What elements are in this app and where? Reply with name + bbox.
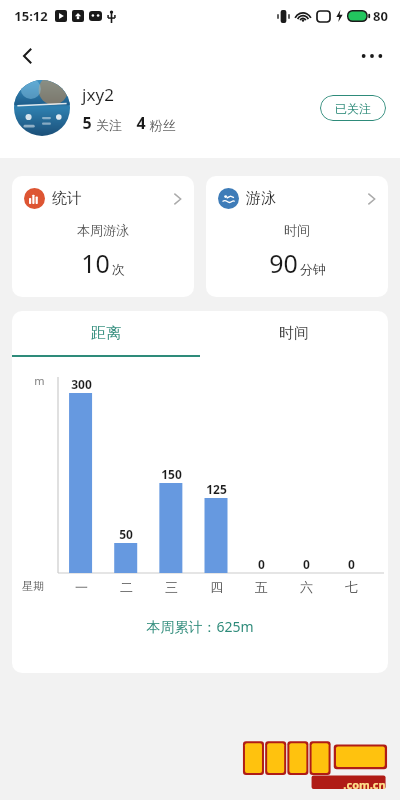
staticText: 分钟 <box>300 261 326 277</box>
staticText: 距离 <box>91 324 121 343</box>
staticText: 已关注 <box>335 101 371 116</box>
staticText: 五 <box>255 579 268 595</box>
staticText: 80 <box>373 7 388 25</box>
staticText: 10 <box>81 246 110 280</box>
staticText: 时间 <box>284 222 310 238</box>
button[interactable]: jxy2 <box>82 83 320 134</box>
staticText: 关注 <box>92 116 122 134</box>
button[interactable]: 统计 <box>12 176 194 297</box>
button[interactable]: 距离 <box>12 311 200 355</box>
staticText: .com.cn <box>343 777 386 792</box>
staticText: 0 <box>348 556 355 572</box>
staticText: 90 <box>269 246 298 280</box>
staticText: 二 <box>120 579 133 595</box>
staticText: 四 <box>210 579 223 595</box>
staticText: jxy2 <box>82 83 114 106</box>
button[interactable]: 时间 <box>200 311 388 355</box>
staticText: 星期 <box>22 579 44 593</box>
button[interactable]: 已关注 <box>320 95 386 121</box>
staticText: 0 <box>258 556 265 572</box>
staticText: 5 <box>82 112 92 134</box>
staticText: 125 <box>206 481 227 497</box>
button[interactable]: More options <box>350 34 394 78</box>
button[interactable]: Back <box>6 34 50 78</box>
staticText: 次 <box>112 261 125 277</box>
button[interactable]: Profile photo <box>14 80 70 136</box>
staticText: 0 <box>303 556 310 572</box>
staticText: 一 <box>75 579 88 595</box>
staticText: 本周游泳 <box>77 222 129 238</box>
staticText: 统计 <box>52 189 82 208</box>
staticText: m <box>34 373 45 388</box>
staticText: 50 <box>119 526 133 542</box>
staticText: 4 <box>136 112 146 134</box>
staticText: 时间 <box>279 324 309 343</box>
staticText: 150 <box>161 466 182 482</box>
staticText: 300 <box>71 376 92 392</box>
staticText: 15:12 <box>14 7 48 25</box>
staticText: 六 <box>300 579 313 595</box>
staticText: 七 <box>345 579 358 595</box>
staticText: 粉丝 <box>146 116 176 134</box>
staticText: 本周累计：625m <box>146 617 254 636</box>
staticText: 游泳 <box>246 189 276 208</box>
button[interactable]: 游泳 <box>206 176 388 297</box>
staticText: 三 <box>165 579 178 595</box>
